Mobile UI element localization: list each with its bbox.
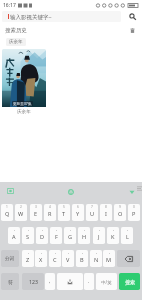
button[interactable]: Hide keyboard [128, 188, 135, 195]
staticText: 输入影视关键字~ [10, 13, 52, 21]
staticText: E [34, 210, 38, 218]
button[interactable]: V [62, 250, 74, 267]
button[interactable]: 123 [22, 273, 44, 290]
staticText: S [26, 233, 30, 241]
button[interactable]: M [103, 250, 115, 267]
button[interactable]: F [50, 227, 62, 244]
button[interactable]: 分词 [1, 250, 19, 267]
staticText: 9 [119, 205, 121, 209]
staticText: 7 [91, 205, 93, 209]
staticText: 123 [29, 278, 38, 285]
staticText: 搜索历史 [5, 27, 27, 34]
staticText: W [18, 210, 24, 218]
staticText: L [126, 233, 129, 241]
button[interactable]: Search [127, 11, 137, 21]
staticText: V [66, 256, 70, 264]
button[interactable]: N [90, 250, 102, 267]
button[interactable]: Emoji [67, 188, 74, 195]
staticText: 分词 [5, 256, 15, 262]
button[interactable]: H [78, 227, 90, 244]
button[interactable]: 符 [1, 273, 19, 290]
button[interactable]: 3 [30, 204, 42, 221]
staticText: , [49, 278, 51, 285]
button[interactable]: S [22, 227, 34, 244]
staticText: 4 [49, 205, 51, 209]
button[interactable]: A [8, 227, 20, 244]
staticText: 更新至37集 [13, 101, 32, 106]
button[interactable]: 1 [1, 204, 13, 221]
staticText: C [53, 256, 57, 264]
button[interactable]: X [35, 250, 47, 267]
button[interactable]: . [84, 273, 94, 290]
staticText: G [68, 233, 73, 241]
staticText: 庆余年 [17, 109, 31, 115]
button[interactable]: 搜索 [119, 273, 140, 290]
button[interactable]: 更新至37集 [2, 49, 46, 116]
staticText: . [88, 278, 90, 285]
staticText: I [105, 210, 107, 218]
button[interactable]: 7 [86, 204, 98, 221]
staticText: R [48, 210, 52, 218]
staticText: 中/英 [101, 279, 112, 285]
staticText: 2 [20, 205, 22, 209]
button[interactable]: 2 [15, 204, 27, 221]
button[interactable]: 9 [114, 204, 126, 221]
staticText: T [62, 210, 66, 218]
button[interactable]: L [121, 227, 133, 244]
staticText: 0 [133, 205, 135, 209]
staticText: K [111, 233, 115, 241]
staticText: P [132, 210, 136, 218]
staticText: Q [5, 210, 10, 218]
staticText: U [90, 210, 95, 218]
staticText: M [106, 256, 112, 264]
staticText: Y [76, 210, 80, 218]
staticText: D [40, 233, 45, 241]
staticText: B [80, 256, 84, 264]
staticText: 16:17 [3, 2, 16, 9]
button[interactable]: , [45, 273, 55, 290]
button[interactable]: 中/英 [96, 273, 117, 290]
button[interactable]: Space [57, 273, 83, 290]
button[interactable]: B [76, 250, 88, 267]
button[interactable]: Clear search history [127, 25, 137, 35]
staticText: 符 [8, 279, 13, 285]
button[interactable]: C [49, 250, 61, 267]
staticText: F [55, 233, 58, 241]
button[interactable]: G [64, 227, 76, 244]
button[interactable]: 输入影视关键字~ [2, 11, 121, 22]
button[interactable]: 庆余年 [6, 38, 26, 46]
staticText: 5 [63, 205, 65, 209]
button[interactable]: D [36, 227, 48, 244]
button[interactable]: Clipboard [7, 188, 14, 194]
staticText: N [94, 256, 99, 264]
button[interactable]: 8 [100, 204, 112, 221]
staticText: 6 [77, 205, 79, 209]
button[interactable]: 6 [72, 204, 84, 221]
staticText: 庆余年 [9, 39, 23, 45]
button[interactable]: J [93, 227, 105, 244]
button[interactable]: 5 [58, 204, 70, 221]
staticText: X [39, 256, 43, 264]
button[interactable]: Z [22, 250, 34, 267]
button[interactable]: Backspace [117, 250, 140, 267]
staticText: 1 [6, 205, 8, 209]
button[interactable]: 4 [44, 204, 56, 221]
button[interactable]: Keyboard settings [136, 185, 142, 191]
staticText: H [82, 233, 87, 241]
button[interactable]: K [107, 227, 119, 244]
staticText: Z [26, 256, 30, 264]
staticText: 8 [105, 205, 107, 209]
staticText: J [98, 233, 100, 241]
staticText: 搜索 [125, 279, 135, 285]
staticText: O [118, 210, 123, 218]
button[interactable]: 0 [128, 204, 140, 221]
staticText: 3 [35, 205, 37, 209]
staticText: A [12, 233, 16, 241]
